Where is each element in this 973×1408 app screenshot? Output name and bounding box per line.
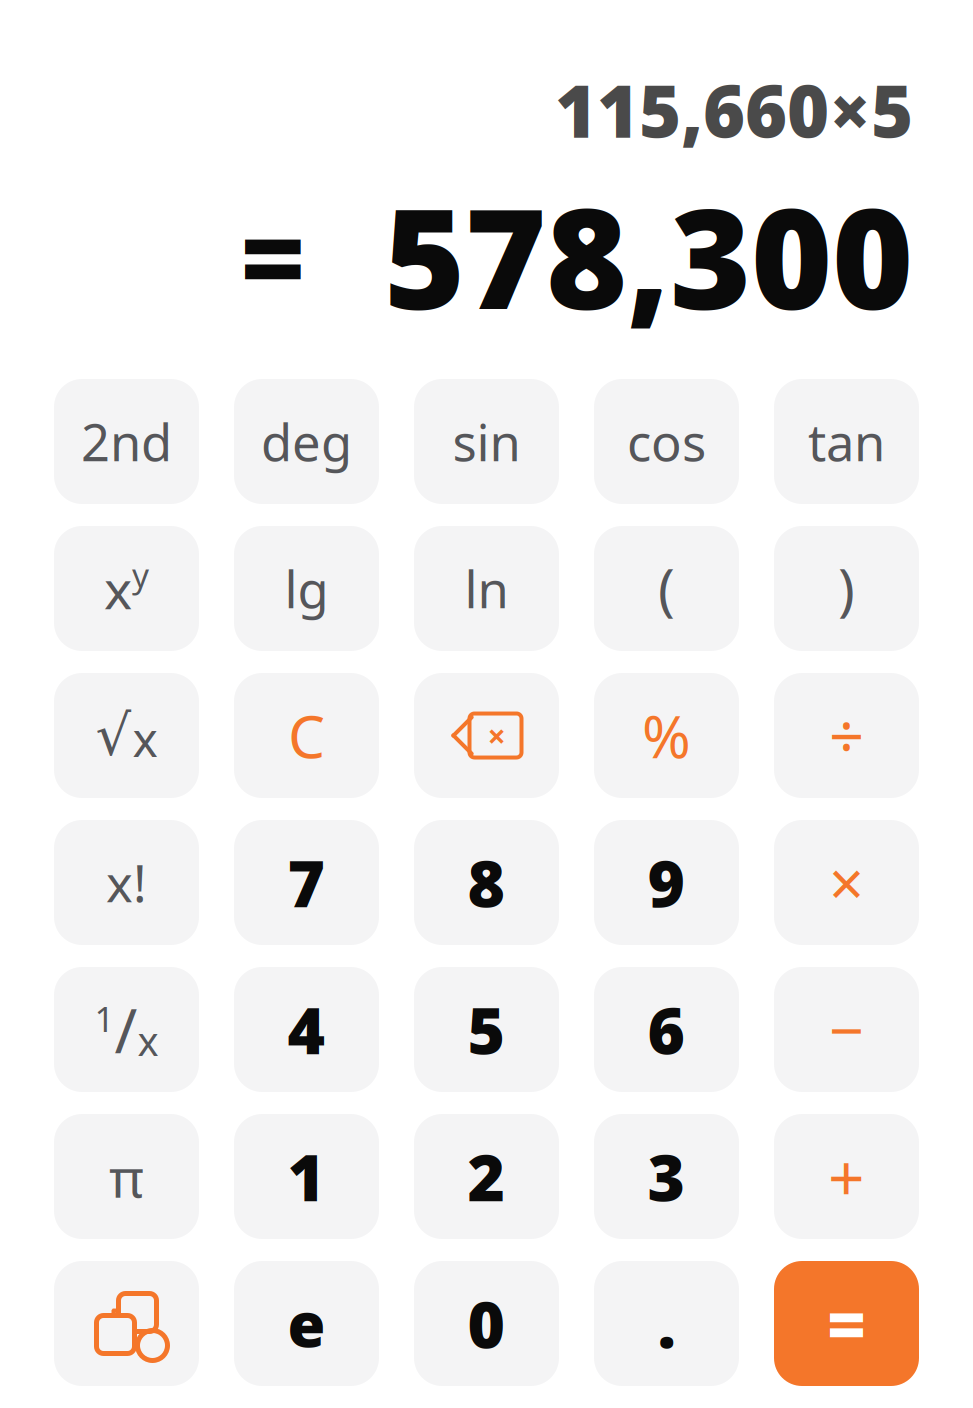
staticText: y: [132, 552, 149, 597]
staticText: 6: [647, 987, 685, 1072]
staticText: π: [109, 1141, 144, 1212]
staticText: x: [132, 707, 157, 770]
staticText: 3: [647, 1134, 685, 1219]
staticText: 7: [287, 840, 325, 925]
staticText: =: [240, 181, 306, 330]
button[interactable]: 4: [234, 967, 379, 1092]
button[interactable]: e: [234, 1261, 379, 1386]
button[interactable]: 3: [594, 1114, 739, 1239]
button[interactable]: .: [594, 1261, 739, 1386]
staticText: −: [829, 989, 864, 1070]
button[interactable]: Backspace: [414, 673, 559, 798]
button[interactable]: 7: [234, 820, 379, 945]
button[interactable]: x!: [54, 820, 199, 945]
staticText: ×: [487, 714, 505, 757]
staticText: 2: [467, 1134, 505, 1219]
button[interactable]: 9: [594, 820, 739, 945]
staticText: √: [95, 704, 131, 767]
staticText: cos: [627, 408, 706, 475]
staticText: 2nd: [81, 408, 172, 475]
button[interactable]: C: [234, 673, 379, 798]
staticText: ln: [464, 555, 508, 622]
button[interactable]: =: [774, 1261, 919, 1386]
button[interactable]: −: [774, 967, 919, 1092]
button[interactable]: 8: [414, 820, 559, 945]
staticText: ÷: [829, 695, 864, 776]
staticText: lg: [284, 555, 328, 622]
staticText: x: [137, 1014, 158, 1067]
button[interactable]: tan: [774, 379, 919, 504]
staticText: +: [828, 1134, 865, 1219]
staticText: 9: [647, 840, 685, 925]
button[interactable]: Unit converter: [54, 1261, 199, 1386]
staticText: 0: [467, 1281, 505, 1366]
staticText: ): [838, 551, 855, 626]
staticText: 1: [94, 995, 114, 1041]
staticText: %: [642, 696, 691, 774]
button[interactable]: 1: [234, 1114, 379, 1239]
staticText: .: [657, 1281, 675, 1366]
button[interactable]: cos: [594, 379, 739, 504]
button[interactable]: deg: [234, 379, 379, 504]
button[interactable]: ): [774, 526, 919, 651]
button[interactable]: 2nd: [54, 379, 199, 504]
staticText: tan: [808, 408, 885, 475]
button[interactable]: ln: [414, 526, 559, 651]
staticText: x: [104, 553, 132, 624]
button[interactable]: +: [774, 1114, 919, 1239]
button[interactable]: 0: [414, 1261, 559, 1386]
button[interactable]: sin: [414, 379, 559, 504]
staticText: 5: [467, 987, 505, 1072]
button[interactable]: One over x: [54, 967, 199, 1092]
staticText: 8: [467, 840, 505, 925]
staticText: 1: [287, 1134, 325, 1219]
staticText: deg: [261, 408, 352, 475]
staticText: C: [288, 696, 325, 774]
staticText: (: [658, 551, 675, 626]
staticText: 115,660×5: [555, 62, 913, 158]
staticText: sin: [452, 408, 520, 475]
button[interactable]: 2: [414, 1114, 559, 1239]
button[interactable]: 6: [594, 967, 739, 1092]
staticText: /: [114, 989, 137, 1070]
button[interactable]: lg: [234, 526, 379, 651]
button[interactable]: (: [594, 526, 739, 651]
staticText: e: [287, 1283, 325, 1364]
button[interactable]: π: [54, 1114, 199, 1239]
button[interactable]: 5: [414, 967, 559, 1092]
button[interactable]: %: [594, 673, 739, 798]
button[interactable]: x: [54, 526, 199, 651]
staticText: 578,300: [384, 164, 913, 348]
button[interactable]: ×: [774, 820, 919, 945]
button[interactable]: ÷: [774, 673, 919, 798]
staticText: 4: [287, 987, 325, 1072]
staticText: ×: [829, 842, 864, 923]
staticText: =: [827, 1279, 866, 1368]
staticText: x!: [106, 849, 147, 916]
button[interactable]: Square root: [54, 673, 199, 798]
